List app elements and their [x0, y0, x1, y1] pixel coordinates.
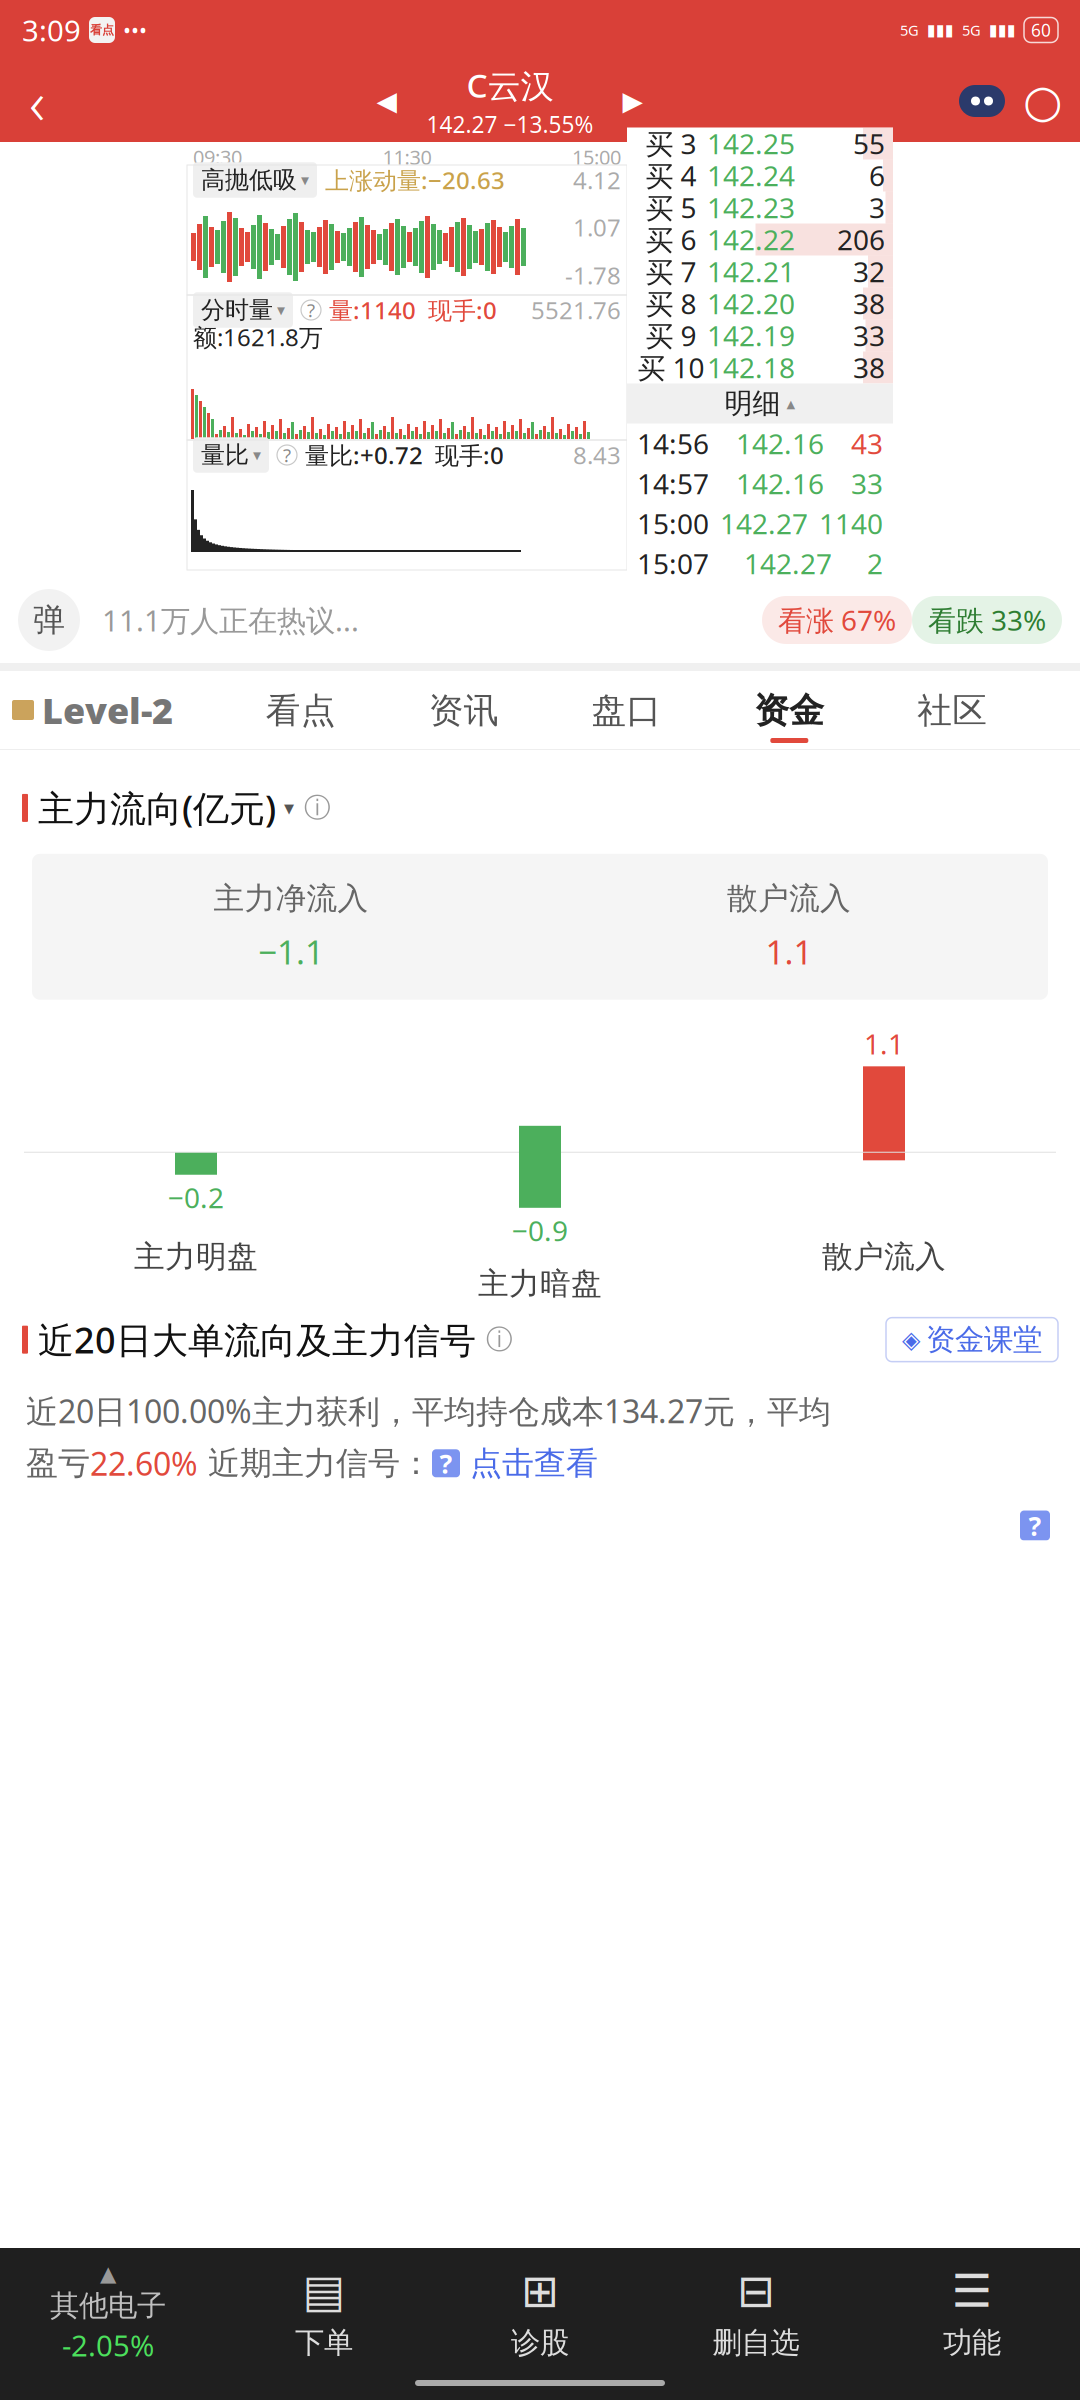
staticText: 近20日大单流向及主力信号: [38, 1316, 476, 1363]
button[interactable]: Level-2: [0, 671, 173, 749]
staticText: −0.2: [168, 1179, 224, 1216]
staticText: 142.27: [720, 505, 808, 542]
button[interactable]: 看点: [266, 671, 336, 749]
staticText: 下单: [295, 2325, 353, 2361]
button[interactable]: ⊟: [648, 2265, 864, 2361]
staticText: ▴: [786, 394, 795, 413]
staticText: ▮▮▮: [927, 21, 954, 39]
button[interactable]: 社区: [917, 671, 987, 749]
button[interactable]: 信号说明: [432, 1449, 460, 1477]
staticText: 142.23: [707, 189, 795, 226]
staticText: 盘口: [591, 689, 661, 732]
staticText: 142.20: [707, 285, 795, 322]
staticText: C云汉: [466, 63, 553, 107]
staticText: ▾: [301, 171, 309, 189]
staticText: 4.12: [573, 164, 621, 196]
button[interactable]: 帮助: [1020, 1510, 1050, 1540]
staticText: 142.22: [707, 221, 795, 258]
staticText: 142.19: [707, 317, 795, 354]
staticText: 1.1: [765, 929, 812, 974]
staticText: 38: [853, 349, 885, 386]
button[interactable]: ⊞: [432, 2265, 648, 2361]
staticText: ○: [1023, 75, 1063, 127]
staticText: 142.24: [707, 157, 795, 194]
button[interactable]: ☰: [864, 2265, 1080, 2361]
staticText: 15:07: [637, 545, 709, 582]
button[interactable]: 11.1万人正在热议...: [80, 589, 762, 651]
staticText: ⊞: [521, 2265, 559, 2317]
staticText: 点击查看: [460, 1444, 598, 1483]
staticText: 买 4: [645, 157, 696, 194]
button[interactable]: 点击查看: [460, 1444, 598, 1483]
staticText: 诊股: [511, 2325, 569, 2361]
staticText: ▮▮▮: [989, 21, 1016, 39]
staticText: ☰: [951, 2265, 992, 2317]
staticText: 上涨动量:−20.63: [325, 164, 505, 196]
button[interactable]: 弹幕开关: [18, 589, 80, 651]
button[interactable]: 搜索: [1012, 66, 1074, 136]
staticText: 买 7: [645, 253, 696, 290]
staticText: 主力流向(亿元): [38, 784, 276, 832]
staticText: 15:00: [637, 505, 709, 542]
button[interactable]: ▤: [216, 2265, 432, 2361]
staticText: 14:57: [637, 465, 709, 502]
staticText: ⓘ: [486, 1323, 513, 1356]
staticText: 55: [853, 125, 885, 162]
button[interactable]: 资讯: [429, 671, 499, 749]
button[interactable]: 分时量: [193, 292, 293, 328]
staticText: 206: [837, 221, 885, 258]
staticText: 买 9: [645, 317, 696, 354]
staticText: 分时量: [201, 295, 273, 325]
staticText: Level-2: [42, 686, 173, 734]
staticText: 33: [851, 465, 883, 502]
button[interactable]: AI助手: [952, 66, 1012, 136]
button[interactable]: 高抛低吸: [193, 162, 317, 198]
staticText: 32: [853, 253, 885, 290]
button[interactable]: 资金: [754, 671, 824, 749]
button[interactable]: 盘口: [591, 671, 661, 749]
button[interactable]: 下一只股票: [608, 66, 658, 136]
staticText: 量比:+0.72 现手:0: [305, 439, 504, 471]
staticText: 量比: [201, 440, 249, 470]
button[interactable]: 上一只股票: [362, 66, 412, 136]
staticText: ?: [439, 1446, 452, 1481]
staticText: 142.27 −13.55%: [426, 109, 593, 139]
button[interactable]: 看涨 67%: [762, 596, 912, 644]
staticText: 3: [869, 189, 885, 226]
button[interactable]: 返回: [6, 66, 68, 136]
staticText: 买 10: [637, 349, 704, 386]
staticText: 6: [869, 157, 885, 194]
staticText: 09:30: [193, 144, 242, 170]
staticText: 5521.76: [531, 294, 621, 326]
button[interactable]: 主力流向(亿元): [38, 784, 294, 832]
staticText: ▾: [284, 797, 294, 819]
staticText: 38: [853, 285, 885, 322]
staticText: 弹: [33, 600, 65, 640]
staticText: 其他电子: [50, 2288, 166, 2324]
staticText: ▤: [302, 2265, 345, 2317]
staticText: 142.18: [707, 349, 795, 386]
staticText: 5G: [962, 20, 981, 40]
button[interactable]: ▲: [0, 2261, 216, 2365]
staticText: 资讯: [429, 689, 499, 732]
staticText: 资金课堂: [926, 1322, 1042, 1358]
staticText: 主力暗盘: [478, 1265, 602, 1303]
button[interactable]: C云汉: [412, 66, 608, 136]
staticText: 近期主力信号：: [198, 1444, 432, 1483]
staticText: 近20日100.00%主力获利，平均持仓成本134.27元，平均: [26, 1389, 831, 1432]
button[interactable]: 量比: [193, 437, 269, 473]
button[interactable]: 明细: [627, 383, 893, 423]
staticText: 11:30: [382, 144, 431, 170]
staticText: 5G: [900, 20, 919, 40]
staticText: 功能: [943, 2325, 1001, 2361]
staticText: ▾: [253, 446, 261, 464]
staticText: 14:56: [637, 425, 709, 462]
staticText: 43: [851, 425, 883, 462]
button[interactable]: ◈: [886, 1318, 1058, 1362]
staticText: 看点: [90, 23, 114, 37]
button[interactable]: 看跌 33%: [912, 596, 1062, 644]
staticText: •••: [123, 16, 147, 44]
staticText: 买 5: [645, 189, 696, 226]
staticText: 1140: [819, 505, 883, 542]
staticText: 22.60%: [90, 1442, 198, 1484]
